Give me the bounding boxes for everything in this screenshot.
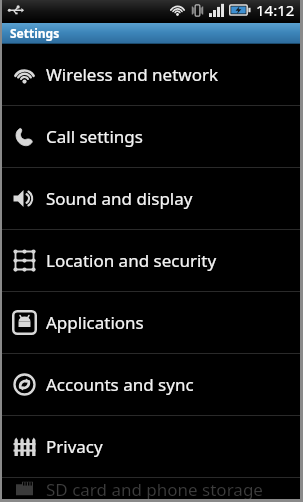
staticText: 14:12 bbox=[256, 0, 295, 20]
button[interactable]: Applications bbox=[2, 292, 300, 353]
button[interactable]: Sound and display bbox=[2, 168, 300, 229]
staticText: Sound and display bbox=[46, 187, 193, 210]
staticText: Accounts and sync bbox=[46, 373, 194, 396]
button[interactable]: Accounts and sync bbox=[2, 354, 300, 415]
button[interactable]: Call settings bbox=[2, 106, 300, 167]
button[interactable]: Wireless and network bbox=[2, 44, 300, 105]
button[interactable]: SD card and phone storage bbox=[2, 478, 300, 499]
staticText: Wireless and network bbox=[46, 63, 219, 86]
staticText: SD card and phone storage bbox=[46, 478, 263, 499]
staticText: Location and security bbox=[46, 249, 217, 272]
button[interactable]: Privacy bbox=[2, 416, 300, 477]
staticText: Privacy bbox=[46, 435, 103, 458]
staticText: Settings bbox=[10, 25, 60, 41]
staticText: Applications bbox=[46, 311, 144, 334]
button[interactable]: Location and security bbox=[2, 230, 300, 291]
staticText: Call settings bbox=[46, 125, 143, 148]
